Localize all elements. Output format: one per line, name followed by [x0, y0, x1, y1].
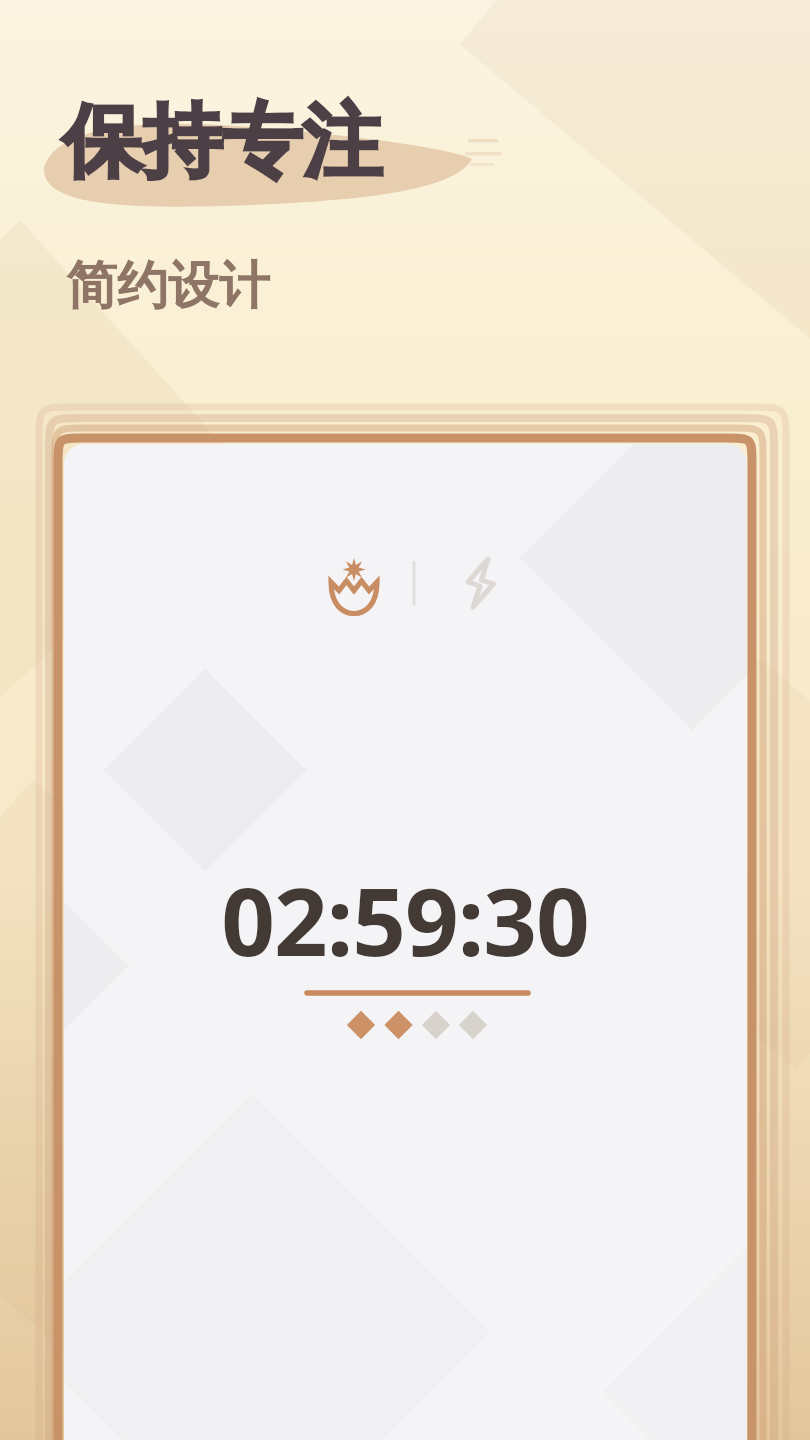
staticText: 02:59:30: [221, 856, 589, 976]
button[interactable]: Focus boost: [451, 553, 511, 613]
staticText: 保持专注: [62, 92, 382, 193]
button[interactable]: Pomodoro progress 2 of 4: [345, 1004, 490, 1046]
button[interactable]: Pomodoro timer mode: [324, 556, 384, 616]
button[interactable]: 02:59:30: [0, 856, 810, 976]
staticText: 简约设计: [66, 254, 270, 318]
